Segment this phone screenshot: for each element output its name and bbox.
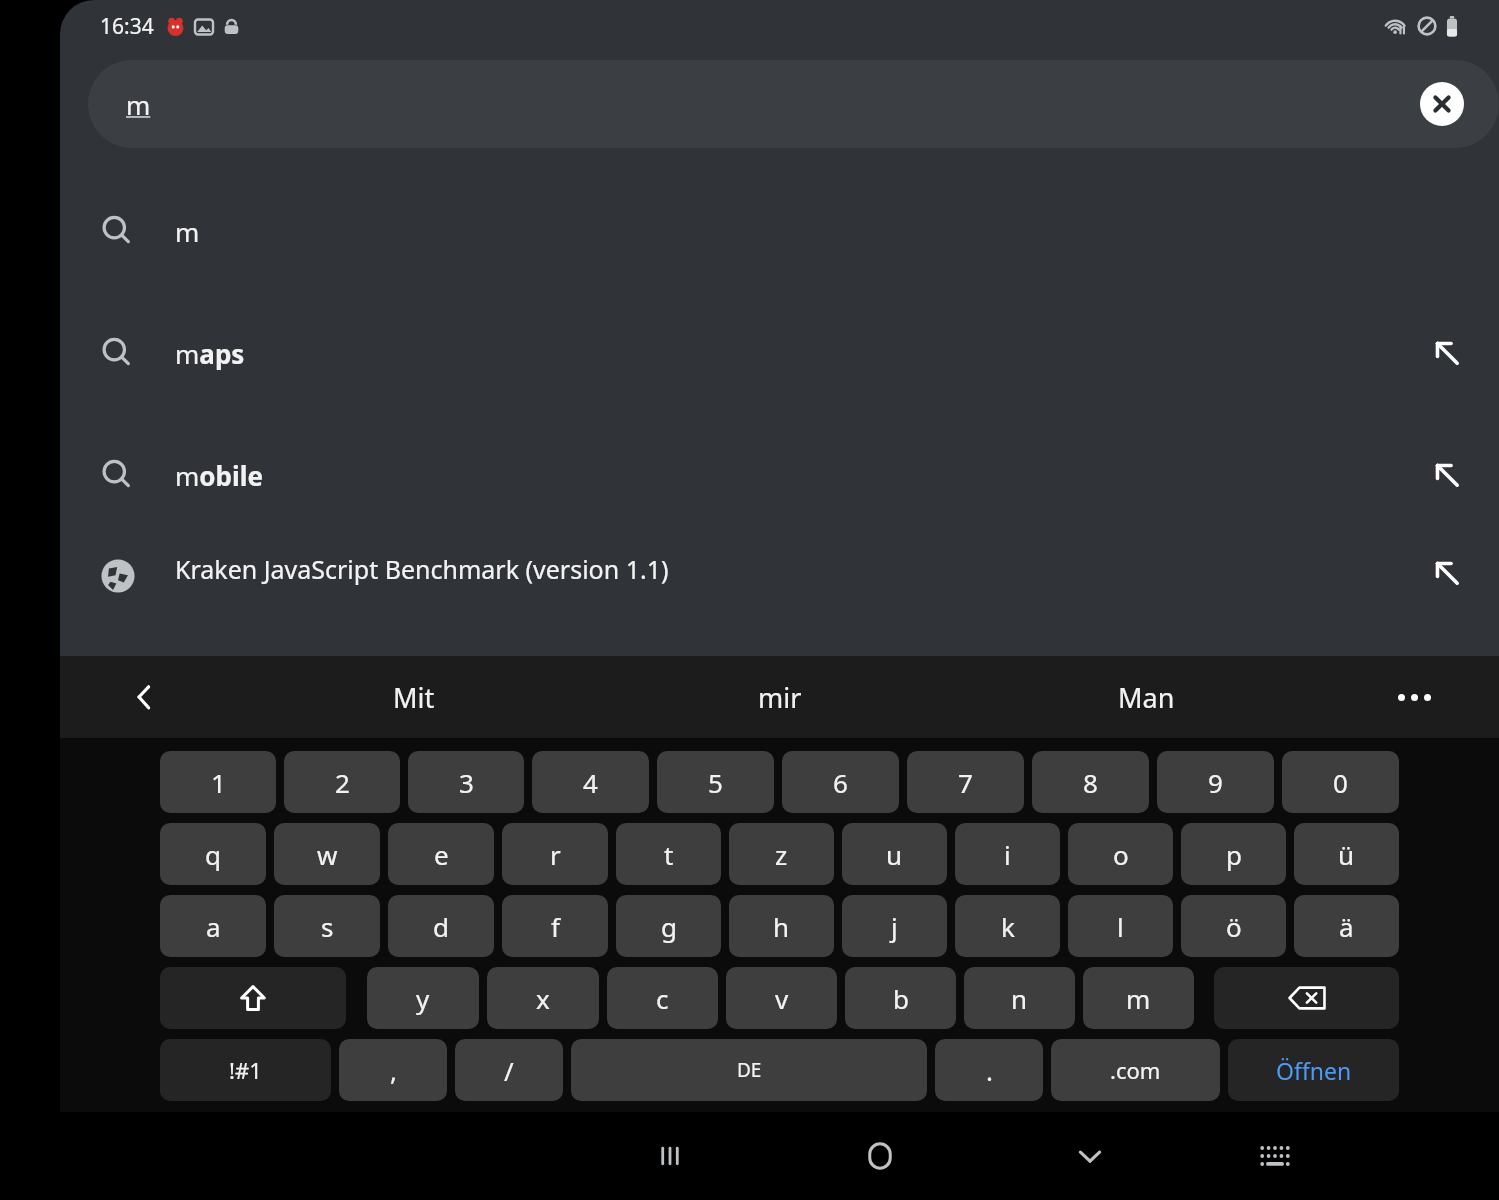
staticText: ö (1226, 909, 1242, 944)
button[interactable]: Hide keyboard (1025, 1112, 1155, 1200)
button[interactable]: 2 (284, 751, 400, 813)
staticText: o (1113, 837, 1129, 872)
button[interactable]: m (60, 170, 1499, 292)
button[interactable]: n (964, 967, 1075, 1029)
staticText: Mit (393, 679, 435, 716)
staticText: m (1126, 981, 1151, 1016)
staticText: ü (1338, 837, 1355, 872)
button[interactable]: h (729, 895, 834, 957)
button[interactable]: 7 (907, 751, 1024, 813)
button[interactable]: z (729, 823, 834, 885)
button[interactable]: w (274, 823, 380, 885)
staticText: u (886, 837, 903, 872)
staticText: 9 (1208, 765, 1223, 800)
button[interactable]: x (487, 967, 599, 1029)
button[interactable]: 6 (782, 751, 899, 813)
staticText: mir (758, 679, 802, 716)
button[interactable]: Backspace (1214, 967, 1399, 1029)
button[interactable]: Back (60, 656, 230, 738)
button[interactable]: mobile (60, 414, 1499, 536)
staticText: i (1004, 837, 1011, 872)
staticText: k (1001, 909, 1015, 944)
staticText: mobile (175, 458, 264, 493)
button[interactable]: p (1181, 823, 1286, 885)
staticText: 5 (708, 765, 723, 800)
button[interactable]: v (726, 967, 837, 1029)
button[interactable]: 9 (1157, 751, 1274, 813)
button[interactable]: Kraken JavaScript Benchmark (version 1.1… (60, 536, 1499, 646)
button[interactable]: mir (597, 656, 963, 738)
staticText: Kraken JavaScript Benchmark (version 1.1… (175, 552, 669, 586)
staticText: w (317, 837, 338, 872)
button[interactable]: , (339, 1039, 447, 1101)
button[interactable]: .com (1051, 1039, 1220, 1101)
staticText: 2 (335, 765, 350, 800)
button[interactable]: e (388, 823, 494, 885)
button[interactable]: Man (963, 656, 1329, 738)
button[interactable]: Öffnen (1228, 1039, 1399, 1101)
button[interactable]: m (1083, 967, 1194, 1029)
button[interactable]: . (935, 1039, 1043, 1101)
staticText: 6 (833, 765, 848, 800)
button[interactable]: i (955, 823, 1060, 885)
button[interactable]: d (388, 895, 494, 957)
button[interactable]: b (845, 967, 956, 1029)
button[interactable]: t (616, 823, 721, 885)
button[interactable]: Change keyboard (1215, 1112, 1335, 1200)
button[interactable]: 1 (160, 751, 276, 813)
button[interactable]: o (1068, 823, 1173, 885)
button[interactable]: m (88, 60, 1499, 148)
staticText: 3 (459, 765, 474, 800)
staticText: p (1226, 837, 1242, 872)
staticText: t (664, 837, 674, 872)
staticText: m (126, 87, 151, 122)
staticText: h (773, 909, 790, 944)
button[interactable]: a (160, 895, 266, 957)
other: Insert suggestion (1430, 336, 1464, 370)
button[interactable]: Home (815, 1112, 945, 1200)
button[interactable]: 5 (657, 751, 774, 813)
staticText: b (893, 981, 909, 1016)
staticText: / (504, 1053, 514, 1088)
button[interactable]: q (160, 823, 266, 885)
button[interactable]: r (502, 823, 608, 885)
button[interactable]: Shift (160, 967, 346, 1029)
button[interactable]: f (502, 895, 608, 957)
button[interactable]: 4 (532, 751, 649, 813)
button[interactable]: DE (571, 1039, 927, 1101)
button[interactable]: ö (1181, 895, 1286, 957)
staticText: 4 (583, 765, 598, 800)
button[interactable]: More options (1329, 656, 1499, 738)
button[interactable]: Mit (230, 656, 597, 738)
staticText: g (661, 909, 677, 944)
button[interactable]: Clear (1420, 82, 1464, 126)
staticText: 7 (958, 765, 973, 800)
button[interactable]: Recents (605, 1112, 735, 1200)
button[interactable]: 3 (408, 751, 524, 813)
button[interactable]: l (1068, 895, 1173, 957)
staticText: maps (175, 336, 245, 371)
staticText: !#1 (229, 1055, 262, 1085)
button[interactable]: j (842, 895, 947, 957)
button[interactable]: c (607, 967, 718, 1029)
button[interactable]: k (955, 895, 1060, 957)
other: Insert suggestion (1430, 458, 1464, 492)
staticText: a (206, 909, 221, 944)
button[interactable]: ü (1294, 823, 1399, 885)
button[interactable]: y (367, 967, 479, 1029)
button[interactable]: 0 (1282, 751, 1399, 813)
staticText: , (390, 1053, 397, 1088)
button[interactable]: 8 (1032, 751, 1149, 813)
button[interactable]: maps (60, 292, 1499, 414)
button[interactable]: g (616, 895, 721, 957)
button[interactable]: s (274, 895, 380, 957)
staticText: r (550, 837, 561, 872)
staticText: s (321, 909, 334, 944)
staticText: y (416, 981, 430, 1016)
button[interactable]: u (842, 823, 947, 885)
button[interactable]: ä (1294, 895, 1399, 957)
button[interactable]: / (455, 1039, 563, 1101)
staticText: c (656, 981, 669, 1016)
button[interactable]: !#1 (160, 1039, 331, 1101)
staticText: ä (1339, 909, 1354, 944)
